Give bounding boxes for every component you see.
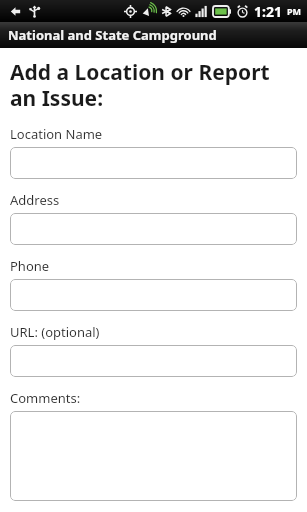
button[interactable] bbox=[10, 411, 297, 501]
staticText: Add a Location or Report an Issue: bbox=[10, 58, 297, 112]
button[interactable] bbox=[10, 147, 297, 179]
staticText: National and State Campground bbox=[8, 26, 217, 44]
staticText: 1:21 bbox=[254, 2, 282, 21]
button[interactable] bbox=[10, 213, 297, 245]
staticText: URL: (optional) bbox=[10, 323, 100, 341]
staticText: Address bbox=[10, 191, 60, 209]
staticText: Location Name bbox=[10, 125, 103, 143]
staticText: Comments: bbox=[10, 389, 81, 407]
staticText: PM bbox=[287, 5, 302, 17]
button[interactable] bbox=[10, 345, 297, 377]
staticText: Phone bbox=[10, 257, 50, 275]
button[interactable] bbox=[10, 279, 297, 311]
